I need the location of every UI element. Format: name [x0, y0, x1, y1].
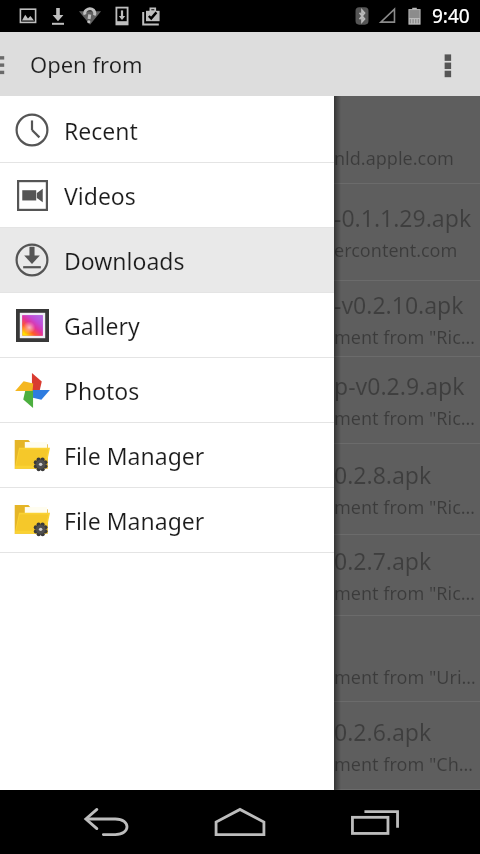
staticText: File Manager: [64, 505, 205, 536]
staticText: ment from "Ch…: [334, 752, 474, 777]
staticText: File Manager: [64, 440, 205, 471]
button[interactable]: Back: [62, 790, 152, 854]
button[interactable]: Recent apps: [330, 790, 420, 854]
staticText: Open from: [30, 49, 143, 79]
button[interactable]: Home: [195, 790, 285, 854]
button[interactable]: ment from "Uri…: [0, 616, 480, 702]
staticText: ment from "Ric…: [334, 495, 476, 520]
staticText: Gallery: [64, 310, 140, 341]
staticText: 0.2.7.apk: [334, 545, 432, 576]
button[interactable]: File Manager: [0, 423, 334, 487]
button[interactable]: p-v0.2.9.apk: [0, 357, 480, 444]
button[interactable]: Recent: [0, 98, 334, 162]
staticText: ment from "Ric…: [334, 406, 476, 431]
other: Open navigation drawer: [0, 50, 7, 78]
button[interactable]: -0.1.1.29.apk: [0, 184, 480, 281]
staticText: 0.2.8.apk: [334, 459, 432, 490]
button[interactable]: 0.2.7.apk: [0, 535, 480, 616]
staticText: 9:40: [432, 3, 470, 29]
staticText: Videos: [64, 180, 136, 211]
staticText: p-v0.2.9.apk: [334, 370, 465, 401]
staticText: ment from "Uri…: [334, 665, 476, 690]
staticText: ercontent.com: [334, 238, 458, 263]
button[interactable]: Gallery: [0, 293, 334, 357]
button[interactable]: 0.2.6.apk: [0, 702, 480, 790]
button[interactable]: nld.apple.com: [0, 96, 480, 184]
staticText: Downloads: [64, 245, 185, 276]
button[interactable]: 0.2.8.apk: [0, 444, 480, 535]
button[interactable]: Downloads: [0, 228, 334, 292]
staticText: ment from "Ric…: [334, 325, 476, 350]
button[interactable]: Photos: [0, 358, 334, 422]
staticText: nld.apple.com: [334, 146, 454, 171]
staticText: -v0.2.10.apk: [334, 289, 464, 320]
staticText: 0.2.6.apk: [334, 716, 432, 747]
staticText: Recent: [64, 115, 138, 146]
staticText: Photos: [64, 375, 140, 406]
button[interactable]: More options: [416, 32, 480, 96]
staticText: -0.1.1.29.apk: [334, 202, 472, 233]
button[interactable]: Videos: [0, 163, 334, 227]
button[interactable]: File Manager: [0, 488, 334, 552]
button[interactable]: -v0.2.10.apk: [0, 281, 480, 357]
staticText: ment from "Ric…: [334, 581, 476, 606]
